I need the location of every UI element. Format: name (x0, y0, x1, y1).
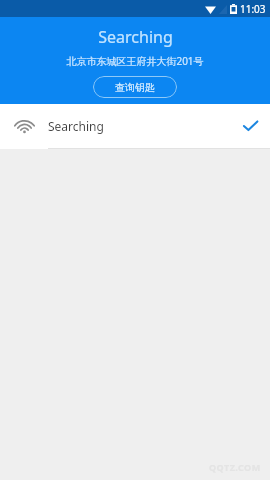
button[interactable]: 查询钥匙 (93, 76, 177, 98)
staticText: Searching (98, 26, 173, 48)
staticText: QQTZ.COM (209, 461, 261, 473)
staticText: 11:03 (240, 2, 266, 16)
staticText: 北京市东城区王府井大街201号 (66, 54, 204, 68)
staticText: 查询钥匙 (115, 81, 155, 94)
other: Wi-Fi (0, 104, 48, 148)
staticText: Searching (48, 118, 104, 134)
other: Connected (230, 104, 270, 148)
button[interactable]: Wi-Fi (0, 104, 270, 148)
